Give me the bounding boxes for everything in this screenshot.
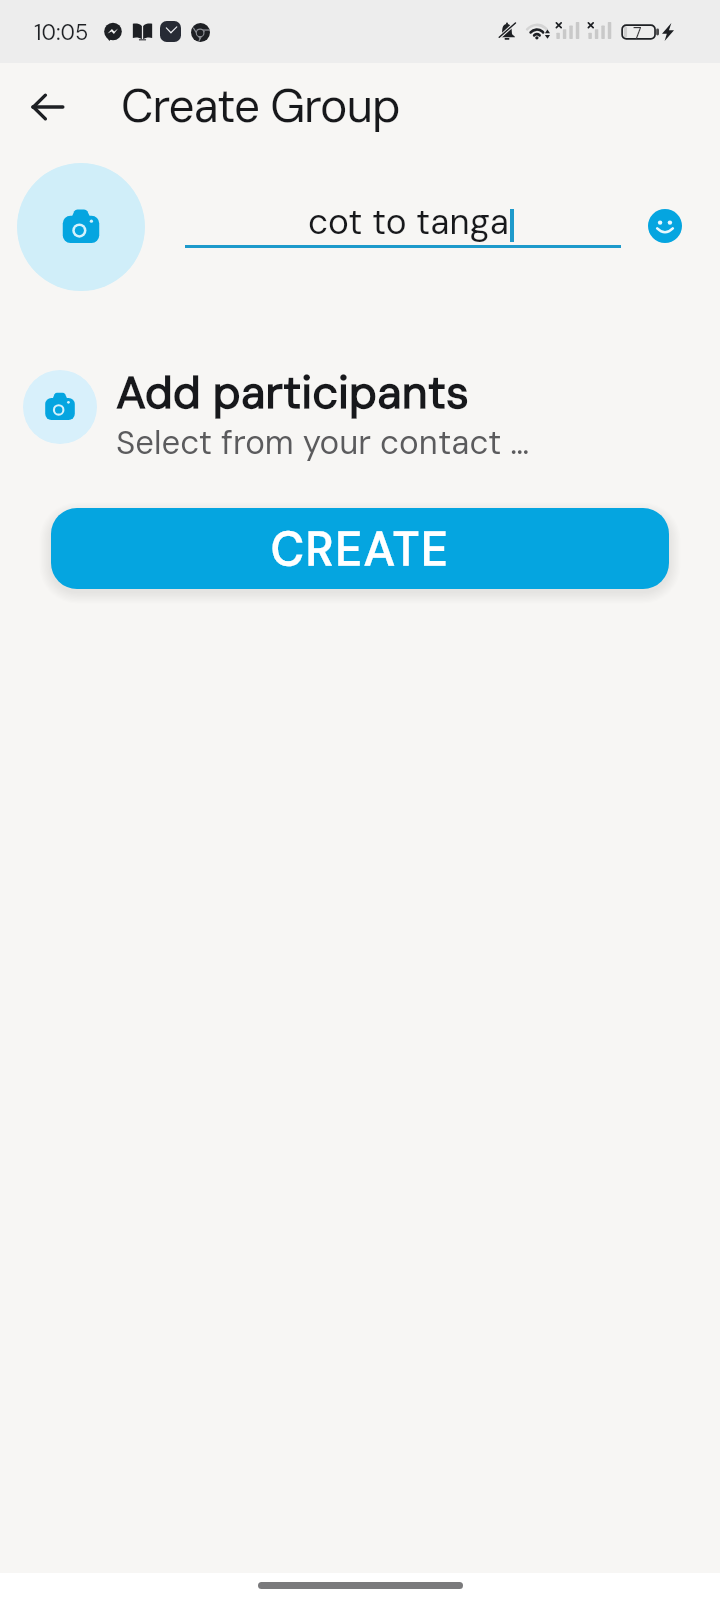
staticText: Add participants <box>116 363 469 422</box>
staticText: 10:05 <box>34 18 89 47</box>
staticText: 7 <box>633 23 642 44</box>
staticText: Create Group <box>121 76 400 136</box>
staticText: cot to tanga <box>191 199 626 245</box>
staticText: Select from your contact … <box>116 421 530 462</box>
button[interactable]: Back <box>14 73 80 139</box>
button[interactable]: Add participants photo <box>23 370 97 444</box>
button[interactable]: CREATE <box>51 508 669 589</box>
button[interactable]: Add participants photo <box>0 363 720 463</box>
button[interactable]: Add group photo <box>17 163 145 291</box>
staticText: CREATE <box>271 519 450 579</box>
button[interactable]: Emoji <box>648 209 682 243</box>
